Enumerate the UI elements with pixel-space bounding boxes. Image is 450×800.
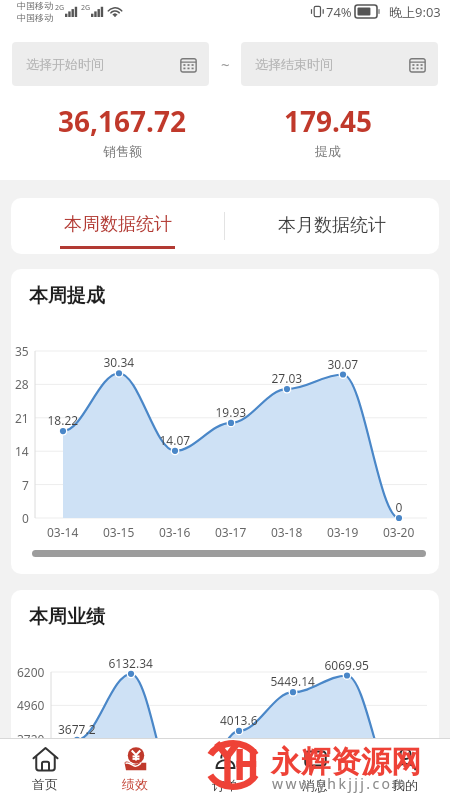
staticText: 选择结束时间	[255, 56, 333, 72]
staticText: 中国移动	[17, 12, 53, 23]
button[interactable]: 绩效	[90, 739, 180, 800]
staticText: 提成	[315, 143, 341, 159]
other: Pick date	[180, 56, 197, 73]
staticText: 晚上9:03	[389, 3, 441, 21]
other: Pick date	[409, 56, 426, 73]
staticText: 本周业绩	[29, 605, 105, 629]
staticText: 中国移动	[17, 0, 53, 11]
staticText: 绩效	[122, 776, 148, 792]
staticText: ~	[221, 54, 230, 74]
staticText: 179.45	[284, 102, 372, 140]
staticText: 销售额	[103, 143, 142, 159]
staticText: 本月数据统计	[278, 214, 386, 237]
staticText: 2G	[55, 3, 65, 13]
staticText: 本周数据统计	[64, 213, 172, 236]
staticText: 74%	[326, 3, 352, 21]
button[interactable]: 首页	[0, 739, 90, 800]
staticText: 36,167.72	[58, 102, 186, 140]
button[interactable]: 本月数据统计	[225, 198, 439, 254]
button[interactable]: 订单	[180, 739, 270, 800]
staticText: 选择开始时间	[26, 56, 104, 72]
staticText: 永辉资源网	[271, 743, 421, 781]
staticText: 2G	[81, 3, 91, 13]
staticText: 首页	[32, 776, 58, 792]
button[interactable]: 消息	[270, 739, 360, 800]
staticText: 本周提成	[29, 284, 105, 308]
staticText: 消息	[302, 777, 328, 793]
button[interactable]: 选择开始时间	[12, 42, 209, 86]
staticText: 订单	[212, 777, 238, 793]
staticText: 我的	[392, 777, 418, 793]
staticText: www.yhkjjj.com	[272, 774, 408, 793]
button[interactable]: 本周数据统计	[11, 198, 224, 254]
button[interactable]: 选择结束时间	[241, 42, 438, 86]
button[interactable]: 我的	[360, 739, 450, 800]
